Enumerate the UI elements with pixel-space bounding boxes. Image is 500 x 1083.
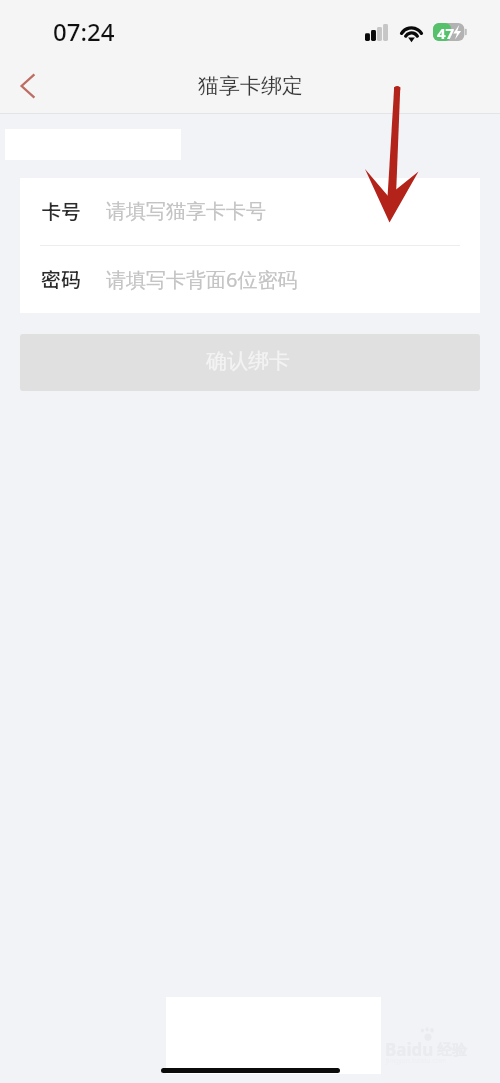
staticText: 07:24 [53, 15, 115, 48]
staticText: Baidu [385, 1038, 434, 1061]
staticText: 47 [437, 23, 455, 41]
staticText: 请填写卡背面6位密码 [106, 266, 298, 293]
staticText: 经验 [437, 1041, 467, 1060]
staticText: 卡号 [41, 196, 81, 225]
button[interactable]: 卡号 [20, 178, 480, 245]
staticText: 猫享卡绑定 [198, 73, 303, 99]
button[interactable]: 密码 [20, 246, 480, 313]
staticText: 密码 [41, 264, 81, 293]
button[interactable]: Back [3, 61, 53, 111]
staticText: 确认绑卡 [206, 348, 290, 374]
staticText: 请填写猫享卡卡号 [106, 199, 266, 224]
